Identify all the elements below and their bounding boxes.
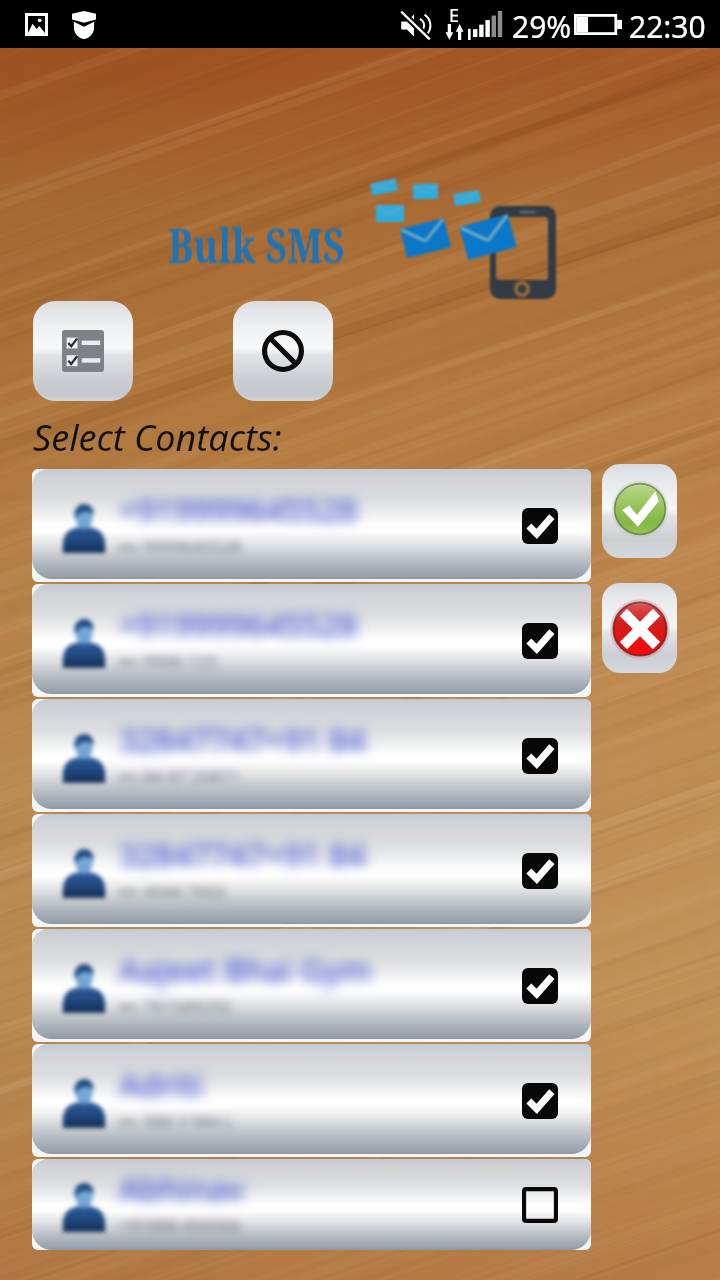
button[interactable]: Abhinav	[32, 1159, 591, 1250]
staticText: Select Contacts:	[33, 413, 282, 462]
staticText: +919999645528	[119, 488, 357, 532]
staticText: 22:30	[629, 6, 706, 47]
button[interactable]: Clear selection	[233, 301, 333, 401]
other: Security	[72, 11, 96, 39]
button[interactable]: Select all contacts	[33, 301, 133, 401]
button[interactable]: 32847747+91 84	[32, 699, 591, 814]
other: Screenshot	[25, 13, 48, 36]
button[interactable]: Aajeet Bhai Gym	[32, 929, 591, 1044]
staticText: 29%	[512, 6, 572, 47]
staticText: m: 988 3 984 L	[119, 1110, 235, 1133]
button[interactable]: Confirm	[602, 464, 677, 558]
button[interactable]: +919999645528	[32, 469, 591, 584]
staticText: +919999645528	[119, 603, 357, 647]
staticText: Abhinav	[119, 1167, 244, 1211]
staticText: Aajeet Bhai Gym	[119, 948, 371, 992]
button[interactable]: +919999645528	[32, 584, 591, 699]
staticText: m: 9999645528	[119, 535, 242, 558]
button[interactable]: Adriti	[32, 1044, 591, 1159]
staticText: 32847747+91 84	[119, 718, 366, 762]
other: Silent mode	[400, 11, 431, 40]
staticText: m: 84 87 20871	[119, 765, 241, 788]
staticText: Adriti	[119, 1063, 203, 1107]
staticText: E	[449, 3, 460, 28]
button[interactable]: 32847747+91 84	[32, 814, 591, 929]
staticText: m: 761589292	[119, 995, 232, 1018]
staticText: +91888 456566	[119, 1214, 241, 1237]
staticText: 32847747+91 84	[119, 833, 366, 877]
staticText: m: 9996 123	[119, 650, 217, 673]
staticText: Bulk SMS	[168, 213, 345, 277]
button[interactable]: Cancel	[602, 583, 677, 673]
staticText: m: 4566 7602	[119, 880, 227, 903]
